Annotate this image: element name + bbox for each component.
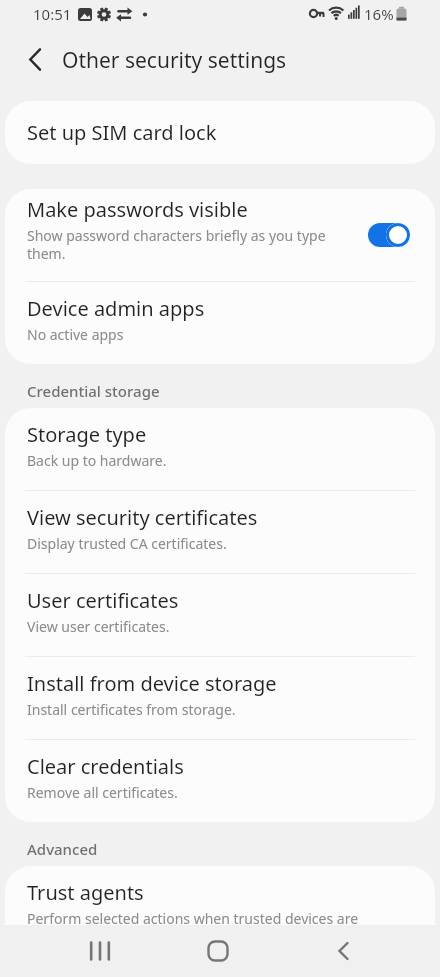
staticText: Advanced: [27, 839, 98, 859]
staticText: Show password characters briefly as you …: [27, 226, 356, 263]
button[interactable]: [194, 927, 242, 975]
staticText: Remove all certificates.: [27, 783, 178, 802]
staticText: View security certificates: [27, 504, 258, 531]
staticText: Storage type: [27, 421, 147, 448]
staticText: User certificates: [27, 587, 179, 614]
staticText: 10:51: [33, 4, 72, 24]
staticText: Other security settings: [62, 46, 287, 75]
staticText: No active apps: [27, 325, 124, 344]
staticText: View user certificates.: [27, 617, 170, 636]
staticText: Install from device storage: [27, 670, 277, 697]
staticText: Trust agents: [27, 879, 144, 906]
staticText: Back up to hardware.: [27, 451, 167, 470]
button[interactable]: Clear credentials: [5, 740, 435, 822]
button[interactable]: Install from device storage: [5, 657, 435, 739]
staticText: Set up SIM card lock: [27, 119, 217, 146]
button[interactable]: Make passwords visible: [5, 189, 435, 281]
button[interactable]: User certificates: [5, 574, 435, 656]
staticText: Display trusted CA certificates.: [27, 534, 227, 553]
staticText: Device admin apps: [27, 295, 205, 322]
button[interactable]: Set up SIM card lock: [5, 101, 435, 164]
button[interactable]: [320, 927, 368, 975]
button[interactable]: View security certificates: [5, 491, 435, 573]
staticText: Perform selected actions when trusted de…: [27, 909, 410, 946]
button[interactable]: [368, 223, 410, 247]
button[interactable]: [8, 38, 56, 86]
button[interactable]: Storage type: [5, 408, 435, 490]
staticText: 16%: [364, 4, 394, 24]
staticText: Credential storage: [27, 381, 160, 401]
staticText: Make passwords visible: [27, 196, 248, 223]
button[interactable]: Device admin apps: [5, 282, 435, 364]
button[interactable]: Trust agents: [5, 866, 435, 966]
staticText: Clear credentials: [27, 753, 184, 780]
staticText: Install certificates from storage.: [27, 700, 236, 719]
button[interactable]: [76, 927, 124, 975]
